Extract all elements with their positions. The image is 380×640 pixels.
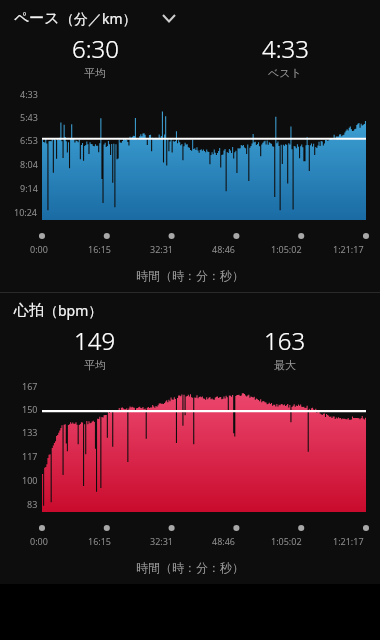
staticText: 時間（時：分：秒）: [136, 560, 244, 575]
staticText: （分／km）: [60, 9, 137, 28]
staticText: 平均: [84, 66, 106, 80]
staticText: 9:14: [20, 182, 38, 194]
staticText: 16:15: [88, 535, 112, 547]
staticText: 1:21:17: [333, 243, 364, 255]
staticText: 10:24: [14, 206, 38, 218]
staticText: 1:05:02: [271, 243, 302, 255]
staticText: 163: [264, 324, 306, 357]
staticText: 6:30: [72, 32, 119, 65]
button[interactable]: ペース: [0, 0, 380, 30]
staticText: 149: [74, 324, 116, 357]
staticText: 48:46: [212, 243, 236, 255]
staticText: 平均: [84, 358, 106, 372]
staticText: 0:00: [30, 535, 48, 547]
staticText: 16:15: [88, 243, 112, 255]
staticText: 83: [27, 498, 38, 510]
staticText: 最大: [274, 358, 296, 372]
staticText: 48:46: [212, 535, 236, 547]
staticText: 5:43: [20, 111, 38, 123]
other: Expand metric selector: [159, 8, 179, 28]
staticText: ペース: [14, 9, 60, 28]
staticText: 6:53: [20, 134, 38, 146]
staticText: （bpm）: [44, 301, 103, 320]
staticText: 1:21:17: [333, 535, 364, 547]
staticText: ベスト: [268, 66, 302, 80]
staticText: 8:04: [20, 158, 38, 170]
staticText: 4:33: [262, 32, 309, 65]
staticText: 133: [22, 426, 38, 438]
staticText: 4:33: [20, 88, 38, 100]
staticText: 150: [22, 403, 38, 415]
staticText: 100: [22, 474, 38, 486]
staticText: 0:00: [30, 243, 48, 255]
staticText: 心拍: [14, 301, 44, 320]
staticText: 167: [22, 380, 38, 392]
button[interactable]: 心拍: [0, 293, 380, 322]
staticText: 1:05:02: [271, 535, 302, 547]
staticText: 時間（時：分：秒）: [136, 268, 244, 283]
staticText: 32:31: [150, 243, 174, 255]
staticText: 117: [22, 450, 38, 462]
staticText: 32:31: [150, 535, 174, 547]
